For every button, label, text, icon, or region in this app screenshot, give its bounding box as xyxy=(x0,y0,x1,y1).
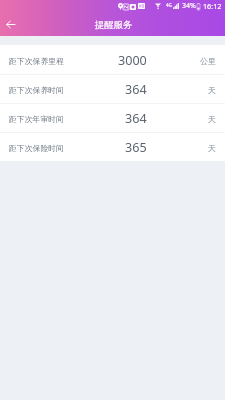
staticText: 公里 xyxy=(200,56,216,66)
staticText: 距下次保险时间 xyxy=(9,143,64,153)
staticText: 4G xyxy=(166,2,172,8)
staticText: 距下次保养时间 xyxy=(9,85,64,95)
staticText: 3000 xyxy=(118,52,147,69)
staticText: 364 xyxy=(125,81,147,98)
button[interactable]: 距下次年审时间 xyxy=(0,103,225,132)
staticText: 天 xyxy=(208,114,216,124)
staticText: 16:12 xyxy=(203,1,222,11)
button[interactable]: Back xyxy=(2,16,19,33)
button[interactable]: 距下次保养里程 xyxy=(0,45,225,74)
staticText: 364 xyxy=(125,110,147,127)
button[interactable]: 距下次保养时间 xyxy=(0,74,225,103)
staticText: 距下次保养里程 xyxy=(9,56,64,66)
staticText: 天 xyxy=(208,85,216,95)
staticText: 34% xyxy=(182,1,196,11)
staticText: 365 xyxy=(125,139,147,156)
button[interactable]: 距下次保险时间 xyxy=(0,132,225,161)
staticText: 提醒服务 xyxy=(95,19,133,31)
staticText: 天 xyxy=(208,143,216,153)
staticText: 距下次年审时间 xyxy=(9,114,64,124)
